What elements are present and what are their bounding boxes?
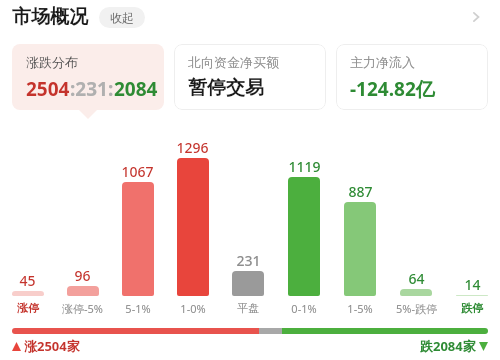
staticText: 涨2504家 xyxy=(24,337,80,355)
staticText: 收起 xyxy=(110,10,134,25)
button[interactable]: 涨跌分布 xyxy=(12,44,164,110)
button[interactable] xyxy=(177,158,209,296)
staticText: 北向资金净买额 xyxy=(188,54,279,70)
staticText: :231: xyxy=(70,76,114,102)
button[interactable] xyxy=(67,286,99,296)
staticText: 5%-跌停 xyxy=(396,301,437,316)
button[interactable] xyxy=(12,291,44,296)
button[interactable] xyxy=(344,202,376,296)
staticText: 5-1% xyxy=(125,301,151,316)
staticText: 96 xyxy=(74,266,91,285)
staticText: 45 xyxy=(19,271,36,290)
button[interactable] xyxy=(288,177,320,296)
staticText: 涨跌分布 xyxy=(26,54,78,70)
button[interactable]: 主力净流入 xyxy=(336,44,488,110)
button[interactable] xyxy=(232,271,264,296)
button[interactable] xyxy=(400,289,432,296)
staticText: 1-5% xyxy=(347,301,373,316)
staticText: 跌2084家 xyxy=(420,337,476,355)
staticText: 主力净流入 xyxy=(350,54,415,70)
staticText: 1119 xyxy=(288,157,321,176)
button[interactable]: 查看更多 xyxy=(464,5,488,29)
staticText: 暂停交易 xyxy=(188,76,264,100)
button[interactable]: 北向资金净买额 xyxy=(174,44,326,110)
staticText: 1-0% xyxy=(180,301,206,316)
staticText: 市场概况 xyxy=(12,5,88,29)
staticText: 2084 xyxy=(114,76,158,102)
staticText: 231 xyxy=(236,251,261,270)
button[interactable] xyxy=(12,328,488,334)
staticText: 887 xyxy=(348,182,373,201)
staticText: 1067 xyxy=(121,162,154,181)
button[interactable] xyxy=(122,182,154,296)
staticText: 0-1% xyxy=(291,301,317,316)
staticText: -124.82亿 xyxy=(350,76,435,102)
staticText: 1296 xyxy=(176,138,209,157)
button[interactable]: 收起 xyxy=(99,7,145,28)
staticText: 平盘 xyxy=(237,301,259,315)
staticText: 14 xyxy=(464,275,481,294)
staticText: 2504 xyxy=(26,76,70,102)
staticText: 涨停-5% xyxy=(62,301,103,316)
staticText: 64 xyxy=(408,269,425,288)
staticText: 涨停 xyxy=(17,301,39,315)
staticText: 跌停 xyxy=(461,301,483,315)
